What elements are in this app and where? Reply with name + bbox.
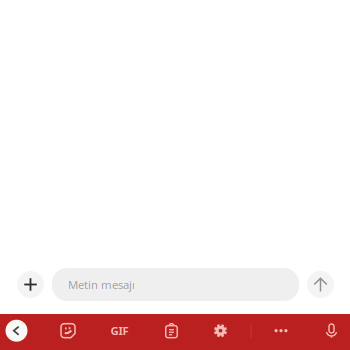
button[interactable]: Back	[0, 313, 33, 350]
button[interactable]: More options	[263, 313, 299, 350]
button[interactable]: GIF	[101, 313, 137, 350]
button[interactable]: Clipboard	[153, 313, 189, 350]
staticText: GIF	[110, 323, 128, 338]
button[interactable]: Stickers	[50, 313, 86, 350]
button[interactable]: Send	[307, 271, 334, 298]
staticText: Metin mesajı	[68, 277, 135, 292]
button[interactable]: Add attachment	[17, 271, 44, 298]
button[interactable]: Voice input	[313, 313, 349, 350]
button[interactable]: Metin mesajı	[52, 268, 299, 301]
button[interactable]: Settings	[202, 313, 238, 350]
